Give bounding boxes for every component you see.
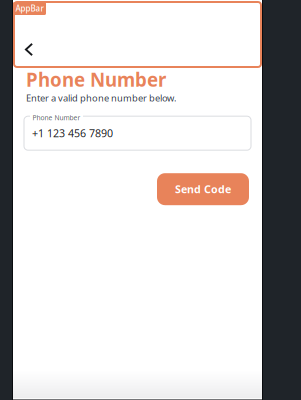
staticText: Send Code bbox=[175, 182, 231, 196]
button[interactable]: Back bbox=[17, 36, 43, 62]
staticText: Phone Number bbox=[32, 113, 80, 122]
staticText: Phone Number bbox=[26, 67, 166, 92]
staticText: Enter a valid phone number below. bbox=[26, 92, 177, 104]
staticText: AppBar bbox=[15, 3, 43, 14]
staticText: +1 123 456 7890 bbox=[32, 126, 113, 140]
button[interactable]: Send Code bbox=[157, 173, 249, 205]
